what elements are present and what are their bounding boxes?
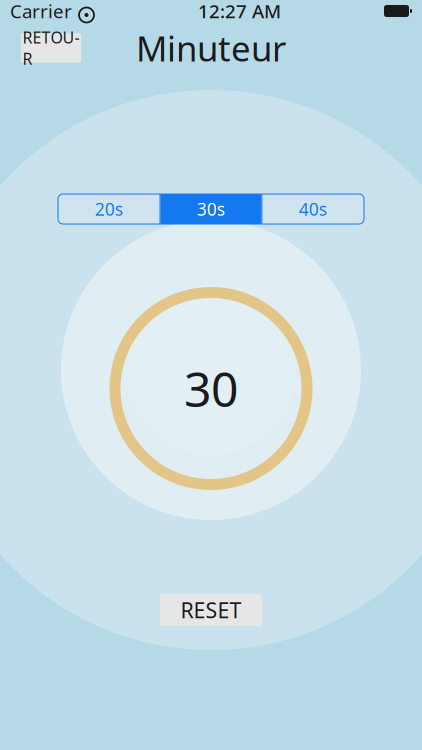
staticText: 30s [197, 197, 225, 220]
staticText: Minuteur [136, 25, 286, 71]
staticText: 40s [299, 197, 327, 220]
staticText: Carrier [10, 0, 72, 23]
staticText: 12:27 AM [198, 0, 281, 23]
button[interactable]: RESET [160, 594, 262, 626]
button[interactable]: 20s [58, 194, 159, 224]
staticText: 20s [95, 197, 123, 220]
button[interactable]: 30s [160, 194, 261, 224]
button[interactable]: RETOUR [21, 33, 81, 62]
staticText: 30 [184, 357, 238, 420]
staticText: RESET [180, 596, 241, 624]
staticText: RETOUR [22, 27, 79, 69]
button[interactable]: 40s [262, 194, 363, 224]
